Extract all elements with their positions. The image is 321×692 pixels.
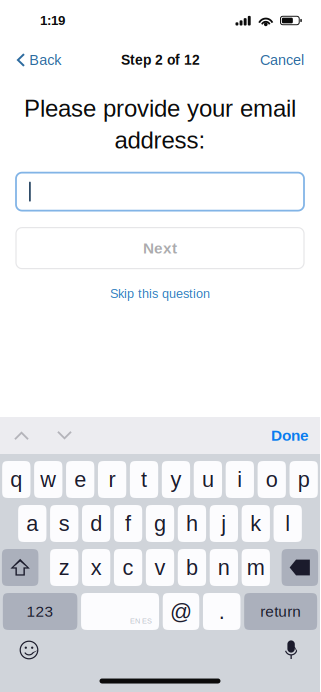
staticText: w [40, 467, 56, 492]
staticText: m [247, 555, 265, 580]
staticText: s [59, 511, 70, 536]
staticText: a [26, 511, 38, 536]
staticText: r [109, 467, 116, 492]
button[interactable]: 123 [3, 593, 77, 630]
staticText: x [91, 555, 102, 580]
button[interactable]: s [50, 505, 78, 542]
button[interactable]: w [34, 461, 62, 498]
staticText: u [202, 467, 214, 492]
button[interactable]: return [244, 593, 317, 630]
button[interactable]: . [203, 593, 240, 630]
staticText: z [59, 555, 70, 580]
staticText: g [154, 511, 166, 536]
button[interactable]: v [146, 549, 174, 586]
staticText: Back [29, 52, 61, 68]
button[interactable]: h [178, 505, 206, 542]
button[interactable]: i [226, 461, 254, 498]
staticText: p [298, 467, 310, 492]
button[interactable]: Next [0, 228, 320, 269]
button[interactable]: Next field [43, 417, 86, 454]
button[interactable]: r [98, 461, 126, 498]
staticText: e [74, 467, 86, 492]
staticText: 1:19 [40, 13, 65, 28]
button[interactable]: z [50, 549, 78, 586]
staticText: Skip this question [110, 287, 210, 301]
button[interactable]: shift [2, 549, 38, 586]
button[interactable]: m [242, 549, 270, 586]
button[interactable]: space [81, 593, 159, 630]
button[interactable]: x [82, 549, 110, 586]
staticText: o [266, 467, 278, 492]
button[interactable]: l [274, 505, 302, 542]
staticText: v [154, 555, 165, 580]
button[interactable]: a [18, 505, 46, 542]
button[interactable]: Emoji [0, 630, 58, 670]
staticText: Please provide your email [24, 95, 296, 122]
staticText: Next [143, 240, 177, 257]
staticText: j [221, 511, 226, 536]
staticText: EN ES [130, 617, 152, 625]
staticText: f [125, 511, 131, 536]
staticText: i [237, 467, 242, 492]
staticText: @ [170, 599, 192, 624]
button[interactable]: e [66, 461, 94, 498]
button[interactable]: f [114, 505, 142, 542]
button[interactable]: j [210, 505, 238, 542]
button[interactable]: n [210, 549, 238, 586]
button[interactable]: Cancel [260, 42, 320, 78]
button[interactable]: q [2, 461, 30, 498]
staticText: b [186, 555, 198, 580]
staticText: Done [271, 427, 309, 444]
button[interactable]: Done [271, 417, 320, 454]
staticText: t [141, 467, 147, 492]
staticText: h [186, 511, 198, 536]
staticText: Cancel [260, 52, 304, 68]
button[interactable]: delete [282, 549, 318, 586]
button[interactable]: @ [163, 593, 199, 630]
staticText: Step 2 of 12 [121, 52, 200, 68]
staticText: q [10, 467, 22, 492]
staticText: l [285, 511, 290, 536]
button[interactable]: b [178, 549, 206, 586]
staticText: address: [114, 127, 205, 154]
button[interactable]: c [114, 549, 142, 586]
button[interactable]: o [258, 461, 286, 498]
button[interactable]: d [82, 505, 110, 542]
staticText: n [218, 555, 230, 580]
button[interactable]: t [130, 461, 158, 498]
staticText: . [219, 599, 225, 624]
staticText: 123 [27, 603, 54, 620]
button[interactable]: Skip this question [100, 282, 220, 306]
staticText: return [260, 603, 301, 620]
button[interactable]: p [289, 461, 318, 498]
staticText: k [250, 511, 261, 536]
staticText: c [123, 555, 134, 580]
button[interactable]: k [242, 505, 270, 542]
button[interactable]: Previous field [0, 417, 43, 454]
button[interactable]: Back [0, 42, 61, 78]
button[interactable]: g [146, 505, 174, 542]
staticText: y [170, 467, 181, 492]
button[interactable]: u [194, 461, 222, 498]
button[interactable]: Dictation [262, 630, 320, 670]
staticText: d [90, 511, 102, 536]
button[interactable]: y [162, 461, 190, 498]
